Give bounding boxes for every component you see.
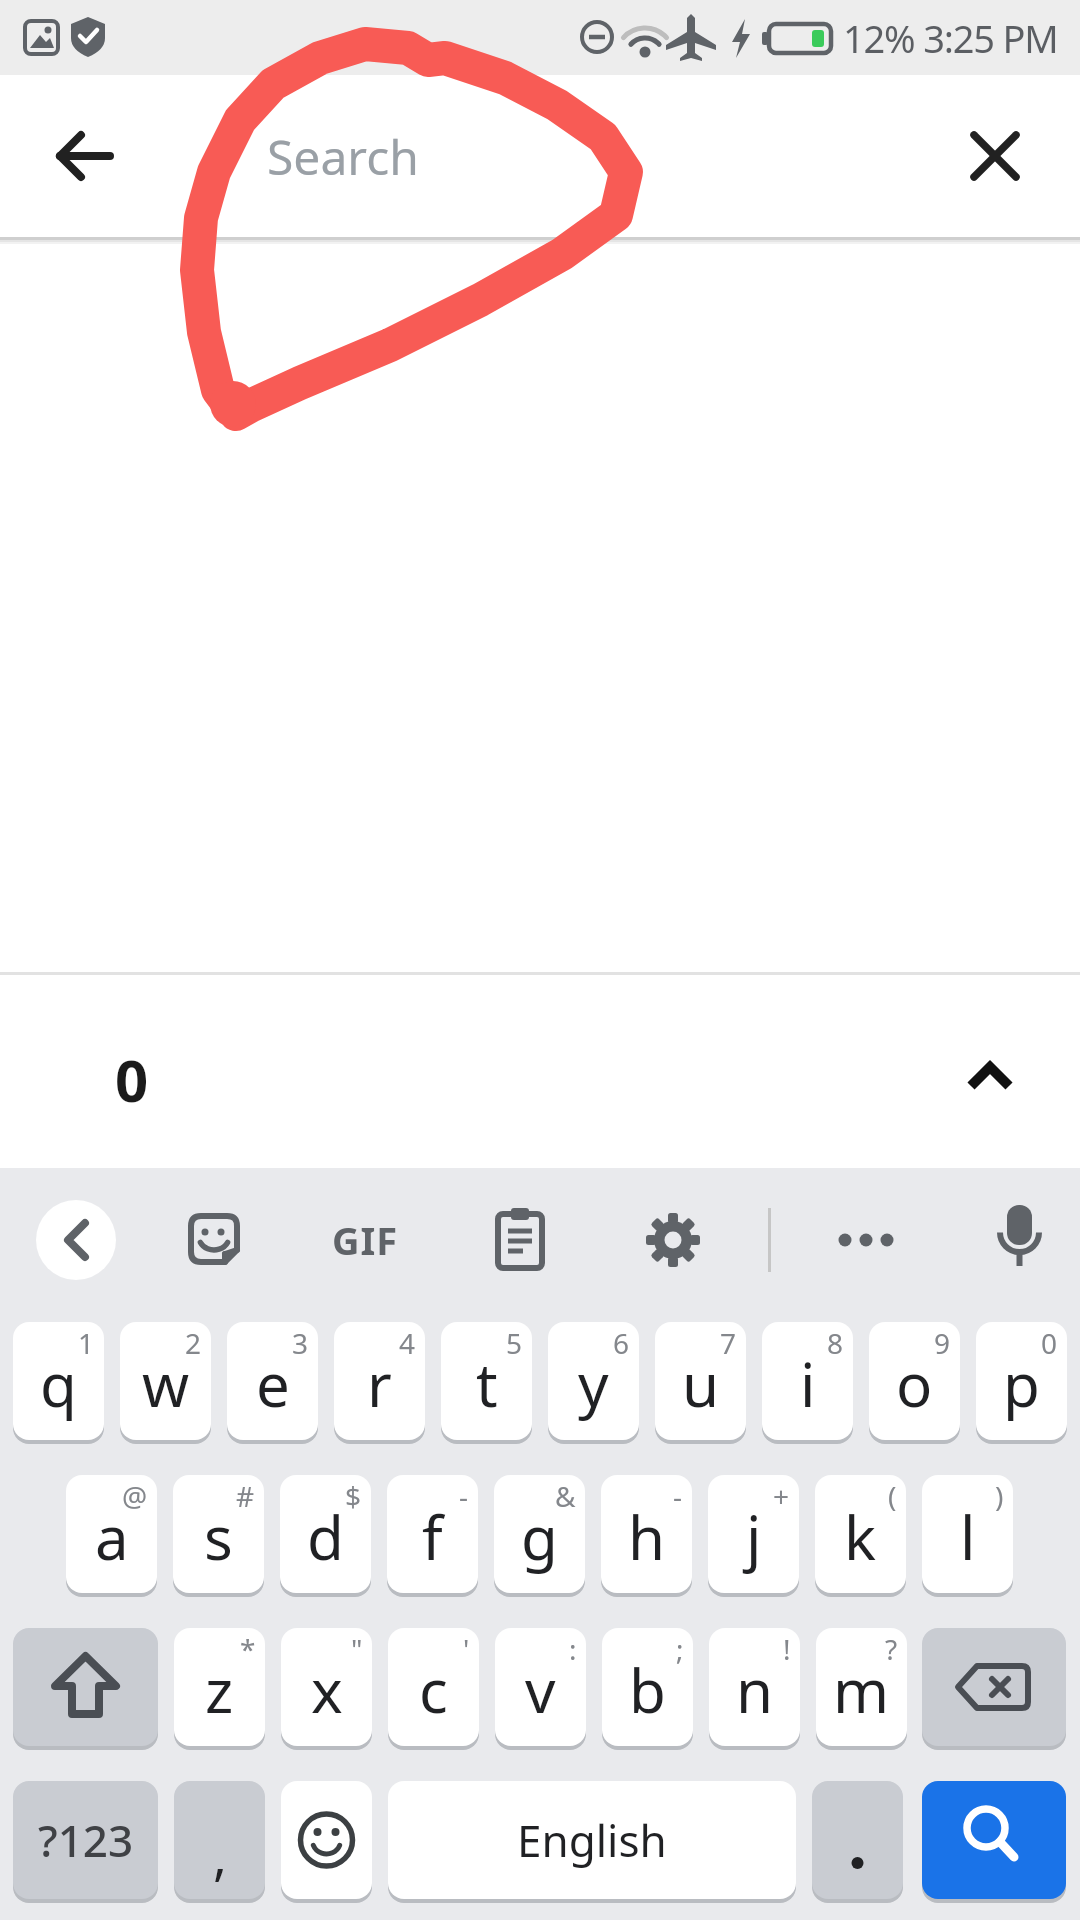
button[interactable] [493, 1206, 549, 1272]
button[interactable] [922, 1781, 1066, 1899]
button[interactable]: q [13, 1322, 104, 1440]
staticText: 3 [292, 1324, 309, 1362]
staticText: b [629, 1649, 666, 1731]
button[interactable]: x [281, 1628, 372, 1746]
staticText: y [578, 1343, 609, 1425]
staticText: " [351, 1630, 363, 1668]
staticText: , [213, 1819, 227, 1890]
button[interactable]: t [441, 1322, 532, 1440]
button[interactable]: s [173, 1475, 264, 1593]
button[interactable]: c [388, 1628, 479, 1746]
staticText: k [844, 1496, 877, 1578]
button[interactable]: v [495, 1628, 586, 1746]
button[interactable]: m [816, 1628, 907, 1746]
button[interactable] [281, 1781, 372, 1899]
button[interactable]: Search [200, 75, 900, 237]
staticText: n [736, 1649, 774, 1731]
staticText: h [628, 1496, 666, 1578]
staticText: ?123 [38, 1810, 134, 1870]
staticText: GIF [332, 1214, 399, 1266]
button[interactable]: w [120, 1322, 211, 1440]
button[interactable] [922, 1628, 1066, 1746]
staticText: ; [676, 1630, 684, 1668]
staticText: : [569, 1630, 577, 1668]
staticText: d [307, 1496, 344, 1578]
button[interactable]: g [494, 1475, 585, 1593]
staticText: i [800, 1343, 816, 1425]
staticText: a [95, 1496, 129, 1578]
button[interactable] [645, 1212, 701, 1268]
button[interactable]: ?123 [13, 1781, 158, 1899]
staticText: ) [995, 1477, 1004, 1515]
staticText: j [746, 1496, 762, 1578]
staticText: * [240, 1630, 256, 1668]
staticText: ' [463, 1630, 470, 1668]
staticText: u [682, 1343, 720, 1425]
staticText: e [256, 1343, 290, 1425]
staticText: r [367, 1343, 392, 1425]
button[interactable] [945, 1045, 1035, 1105]
staticText: c [419, 1649, 448, 1731]
button[interactable]: f [387, 1475, 478, 1593]
button[interactable] [40, 110, 130, 200]
staticText: v [525, 1649, 556, 1731]
staticText: ( [888, 1477, 897, 1515]
button[interactable]: h [601, 1475, 692, 1593]
staticText: ! [783, 1630, 791, 1668]
button[interactable]: o [869, 1322, 960, 1440]
staticText: 12% 3:25 PM [843, 12, 1058, 64]
staticText: l [960, 1496, 976, 1578]
button[interactable]: i [762, 1322, 853, 1440]
staticText: 6 [613, 1324, 630, 1362]
staticText: m [833, 1649, 890, 1731]
button[interactable] [13, 1628, 158, 1746]
button[interactable]: GIF [320, 1212, 410, 1268]
button[interactable]: a [66, 1475, 157, 1593]
staticText: @ [122, 1477, 148, 1515]
staticText: ? [885, 1630, 898, 1668]
staticText: & [555, 1477, 576, 1515]
staticText: Search [267, 124, 419, 189]
staticText: 4 [399, 1324, 416, 1362]
button[interactable]: l [922, 1475, 1013, 1593]
staticText: o [896, 1343, 933, 1425]
button[interactable]: u [655, 1322, 746, 1440]
button[interactable]: p [976, 1322, 1067, 1440]
staticText: x [311, 1649, 343, 1731]
staticText: 0 [1041, 1324, 1058, 1362]
button[interactable] [950, 111, 1040, 201]
staticText: z [205, 1649, 234, 1731]
button[interactable] [185, 1210, 243, 1268]
button[interactable]: k [815, 1475, 906, 1593]
staticText: t [476, 1343, 498, 1425]
staticText: 2 [185, 1324, 202, 1362]
button[interactable] [820, 1212, 910, 1268]
staticText: 0 [115, 1040, 149, 1119]
button[interactable] [990, 1202, 1050, 1274]
staticText: f [422, 1496, 443, 1578]
button[interactable]: r [334, 1322, 425, 1440]
button[interactable]: English [388, 1781, 796, 1899]
staticText: q [40, 1343, 77, 1425]
staticText: - [673, 1477, 683, 1515]
button[interactable]: y [548, 1322, 639, 1440]
staticText: p [1003, 1343, 1040, 1425]
staticText: - [459, 1477, 469, 1515]
staticText: + [773, 1477, 790, 1515]
staticText: g [521, 1496, 558, 1578]
staticText: 8 [827, 1324, 844, 1362]
button[interactable]: j [708, 1475, 799, 1593]
staticText: 5 [506, 1324, 523, 1362]
button[interactable]: d [280, 1475, 371, 1593]
button[interactable] [36, 1200, 116, 1280]
button[interactable]: b [602, 1628, 693, 1746]
staticText: w [142, 1343, 190, 1425]
button[interactable]: n [709, 1628, 800, 1746]
button[interactable]: e [227, 1322, 318, 1440]
staticText: s [204, 1496, 233, 1578]
staticText: 9 [934, 1324, 951, 1362]
button[interactable]: , [174, 1781, 265, 1899]
button[interactable] [812, 1781, 903, 1899]
staticText: 1 [78, 1324, 95, 1362]
button[interactable]: z [174, 1628, 265, 1746]
